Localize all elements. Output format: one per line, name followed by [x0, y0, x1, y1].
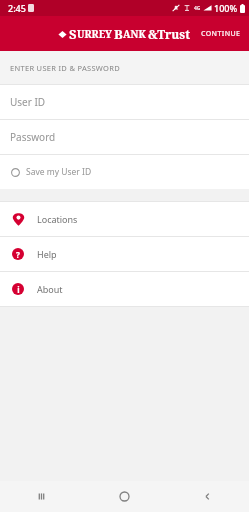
staticText: Password: [10, 130, 56, 144]
staticText: About: [37, 283, 63, 295]
button[interactable]: Save my User ID: [0, 155, 249, 189]
button[interactable]: Back: [166, 481, 249, 512]
staticText: S: [69, 25, 77, 43]
button[interactable]: Password: [0, 120, 249, 154]
button[interactable]: Home: [83, 481, 166, 512]
staticText: 2:45: [8, 2, 26, 14]
staticText: URREY: [77, 27, 112, 41]
button[interactable]: User ID: [0, 85, 249, 119]
staticText: ENTER USER ID & PASSWORD: [10, 63, 120, 73]
staticText: &Trust: [148, 26, 191, 42]
staticText: Help: [37, 248, 57, 260]
button[interactable]: i: [0, 272, 249, 306]
staticText: CONTINUE: [201, 29, 241, 39]
button[interactable]: CONTINUE: [193, 21, 249, 47]
staticText: Locations: [37, 213, 78, 225]
staticText: ANK: [123, 27, 146, 41]
staticText: B: [114, 25, 123, 43]
staticText: Save my User ID: [26, 166, 92, 178]
staticText: i: [17, 284, 20, 295]
staticText: ?: [16, 249, 20, 260]
button[interactable]: Locations: [0, 202, 249, 236]
staticText: 4G: [194, 5, 201, 12]
button[interactable]: Recent apps: [0, 481, 83, 512]
button[interactable]: ?: [0, 237, 249, 271]
staticText: 100%: [214, 2, 238, 14]
staticText: User ID: [10, 95, 46, 109]
